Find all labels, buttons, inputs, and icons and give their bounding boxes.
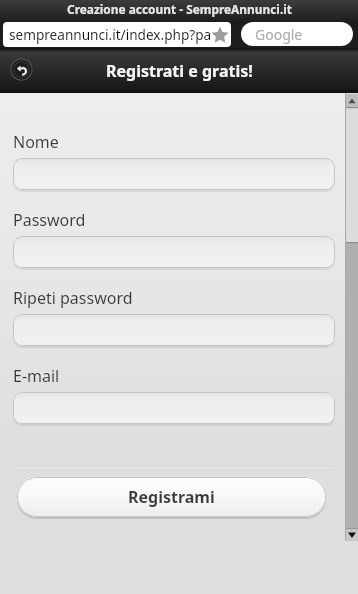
staticText: Google	[255, 25, 303, 44]
button[interactable]	[13, 314, 335, 346]
staticText: Registrati e gratis!	[106, 60, 253, 82]
staticText: Password	[13, 209, 86, 231]
button[interactable]: Google	[241, 22, 353, 46]
button[interactable]	[13, 158, 335, 190]
staticText: E-mail	[13, 365, 60, 387]
staticText: sempreannunci.it/index.php?pa	[9, 25, 212, 44]
button[interactable]	[13, 392, 335, 424]
staticText: Registrami	[128, 486, 215, 508]
button[interactable]	[13, 236, 335, 268]
button[interactable]: sempreannunci.it/index.php?pa	[3, 22, 231, 47]
button[interactable]: Scroll	[345, 93, 358, 541]
staticText: Ripeti password	[13, 287, 133, 309]
staticText: Nome	[13, 131, 59, 153]
staticText: Creazione account - SempreAnnunci.it	[67, 1, 292, 17]
button[interactable]: Registrami	[17, 477, 326, 517]
button[interactable]: Back	[6, 54, 37, 85]
button[interactable]: Bookmark	[211, 26, 229, 44]
